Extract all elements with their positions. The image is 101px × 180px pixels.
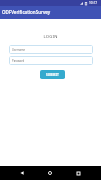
- staticText: LOGIN: [0, 34, 101, 40]
- button[interactable]: Home: [45, 168, 55, 178]
- staticText: Username: [12, 48, 26, 52]
- staticText: ODFVerificationSurvey: [2, 9, 51, 15]
- button[interactable]: Recents: [73, 168, 83, 178]
- staticText: 10:17: [89, 1, 98, 5]
- staticText: SUBMIT: [46, 73, 59, 77]
- button[interactable]: Back: [17, 168, 27, 178]
- staticText: Password: [12, 59, 25, 63]
- button[interactable]: Password: [9, 56, 93, 65]
- button[interactable]: Username: [9, 45, 93, 54]
- button[interactable]: SUBMIT: [40, 70, 65, 79]
